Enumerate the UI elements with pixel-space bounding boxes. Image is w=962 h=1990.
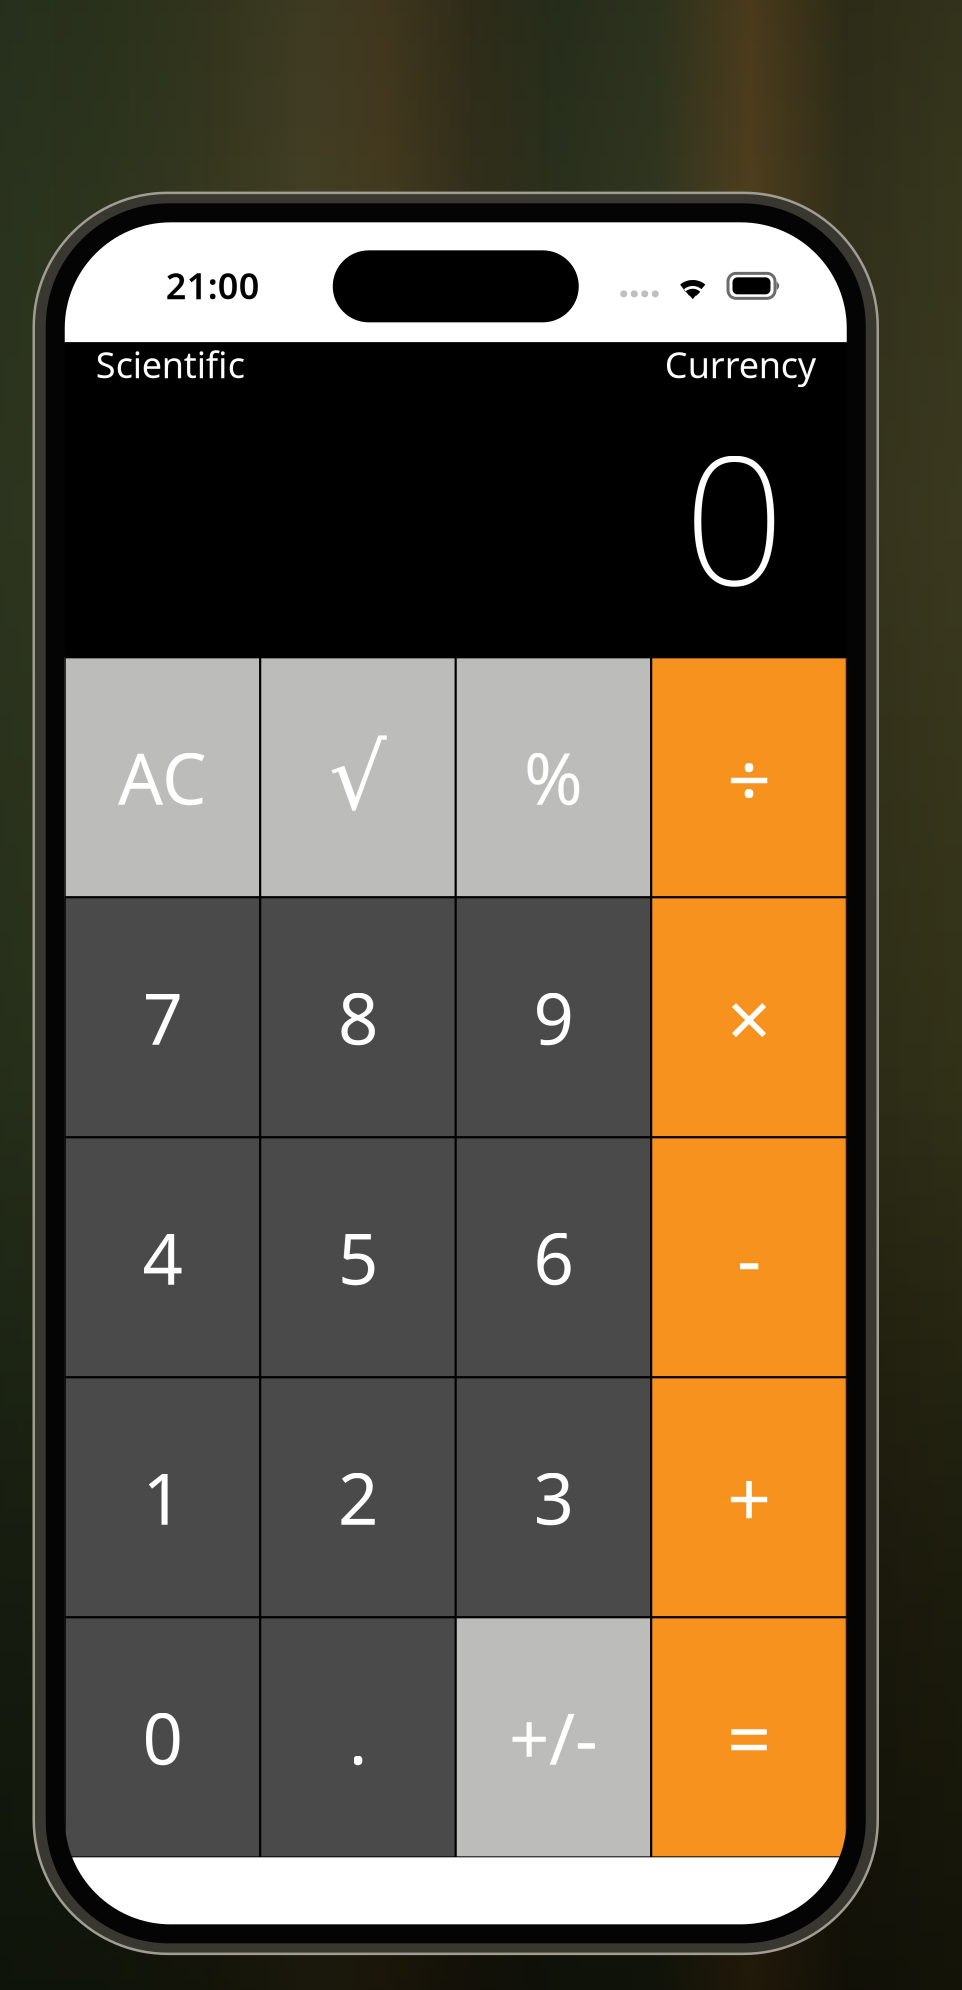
button[interactable]: All clear — [65, 657, 260, 897]
staticText: 9 — [533, 970, 573, 1064]
button[interactable]: 0 — [65, 1617, 260, 1857]
button[interactable]: Multiply — [651, 897, 847, 1137]
staticText: = — [727, 1686, 771, 1789]
staticText: 4 — [142, 1210, 182, 1304]
staticText: 0 — [142, 1690, 182, 1784]
button[interactable]: Square root — [260, 657, 456, 897]
button[interactable]: 8 — [260, 897, 456, 1137]
button[interactable]: 6 — [456, 1137, 651, 1377]
staticText: 1 — [142, 1450, 182, 1544]
button[interactable]: 4 — [65, 1137, 260, 1377]
staticText: - — [736, 1206, 761, 1309]
staticText: √ — [329, 726, 387, 829]
staticText: 8 — [338, 970, 378, 1064]
button[interactable]: 9 — [456, 897, 651, 1137]
staticText: . — [348, 1690, 367, 1784]
button[interactable]: 5 — [260, 1137, 456, 1377]
button[interactable]: Decimal point — [260, 1617, 456, 1857]
staticText: 7 — [142, 970, 182, 1064]
staticText: Scientific — [96, 340, 245, 388]
staticText: × — [727, 966, 771, 1069]
button[interactable]: Plus minus — [456, 1617, 651, 1857]
staticText: 21:00 — [166, 261, 260, 309]
button[interactable]: Plus — [651, 1377, 847, 1617]
button[interactable]: Equals — [651, 1617, 847, 1857]
button[interactable]: Currency — [665, 342, 816, 386]
button[interactable]: Minus — [651, 1137, 847, 1377]
staticText: ÷ — [727, 726, 771, 829]
staticText: 0 — [684, 398, 785, 634]
staticText: +/- — [509, 1690, 598, 1784]
staticText: AC — [118, 730, 207, 824]
button[interactable]: Scientific — [96, 342, 245, 386]
staticText: 5 — [338, 1210, 378, 1304]
button[interactable]: 7 — [65, 897, 260, 1137]
staticText: 3 — [533, 1450, 573, 1544]
staticText: 6 — [533, 1210, 573, 1304]
staticText: % — [524, 730, 583, 824]
staticText: Currency — [665, 340, 816, 388]
button[interactable]: 2 — [260, 1377, 456, 1617]
button[interactable]: 1 — [65, 1377, 260, 1617]
button[interactable]: Percent — [456, 657, 651, 897]
staticText: 2 — [338, 1450, 378, 1544]
button[interactable]: 3 — [456, 1377, 651, 1617]
button[interactable]: Divide — [651, 657, 847, 897]
staticText: + — [727, 1446, 771, 1549]
